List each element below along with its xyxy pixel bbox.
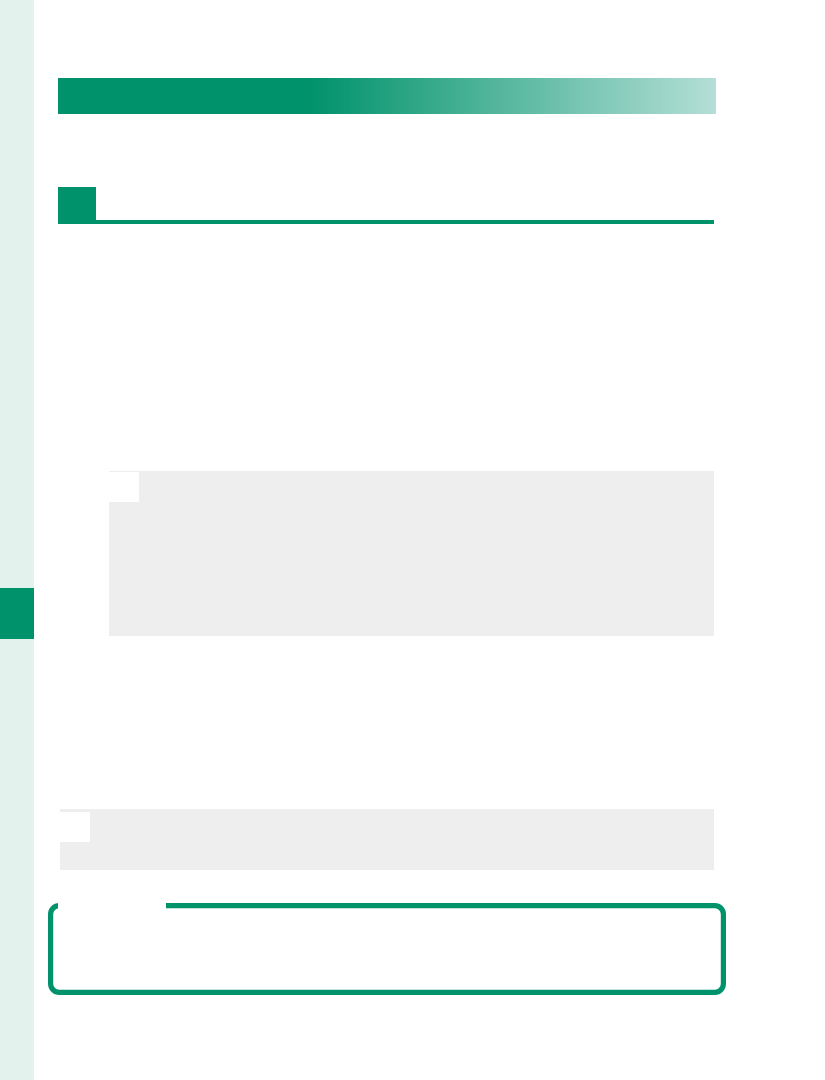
- button[interactable]: Scroll bar track: [0, 0, 34, 1080]
- button[interactable]: Text field: [48, 903, 726, 995]
- button[interactable]: Header banner: [58, 78, 716, 114]
